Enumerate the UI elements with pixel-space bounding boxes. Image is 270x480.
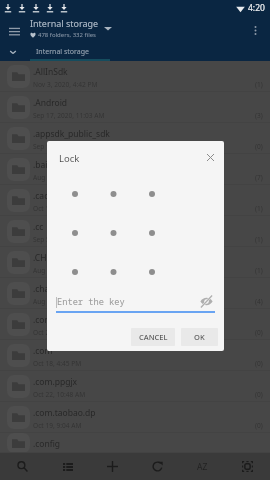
staticText: .com.taobao.dp: [33, 407, 96, 419]
staticText: (1): [255, 235, 263, 244]
button[interactable]: View: [45, 453, 90, 480]
staticText: .AllInSdk: [33, 66, 68, 78]
button[interactable]: Show password: [200, 295, 213, 308]
staticText: .com.cmcm: [33, 314, 79, 326]
staticText: Sep 5, 2020, 8:20 AM: [33, 235, 97, 244]
staticText: .CH: [33, 252, 47, 264]
staticText: Sep 15, 2020, 7:12 PM: [33, 142, 101, 151]
staticText: (7): [255, 173, 263, 182]
staticText: Lock: [59, 152, 80, 165]
staticText: .Android: [33, 97, 68, 109]
staticText: (4): [255, 297, 263, 306]
staticText: .chartboost: [33, 283, 79, 295]
staticText: (0): [255, 328, 263, 337]
button[interactable]: Close: [200, 147, 220, 167]
staticText: Oct 19, 9:04 AM: [33, 421, 82, 430]
button[interactable]: CANCEL: [131, 328, 175, 346]
staticText: (0): [255, 359, 263, 368]
button[interactable]: .com: [0, 340, 270, 371]
staticText: Sep 17, 2020, 11:03 AM: [33, 111, 105, 120]
staticText: Internal storage: [30, 17, 99, 29]
staticText: .cache: [33, 190, 59, 202]
button[interactable]: Add: [90, 453, 135, 480]
staticText: CANCEL: [139, 332, 168, 342]
staticText: (0): [255, 421, 263, 430]
staticText: Aug 9, 2020, 3:30 PM: [33, 266, 98, 275]
staticText: Oct 2, 2020, 11:21 AM: [33, 328, 100, 337]
button[interactable]: Refresh: [135, 453, 180, 480]
staticText: AZ: [197, 461, 208, 473]
button[interactable]: .Android: [0, 92, 270, 123]
staticText: (1): [255, 266, 263, 275]
staticText: Nov 3, 2020, 4:42 PM: [33, 80, 98, 89]
staticText: .com.ppgjx: [33, 376, 78, 388]
button[interactable]: Search: [0, 453, 45, 480]
staticText: (1): [255, 80, 263, 89]
button[interactable]: .cache: [0, 185, 270, 216]
staticText: 478 folders, 332 files: [38, 31, 96, 39]
staticText: Oct 22, 10:48 AM: [33, 390, 86, 399]
button[interactable]: .com.cmcm: [0, 309, 270, 340]
staticText: .config: [33, 438, 61, 450]
button[interactable]: OK: [181, 328, 218, 346]
button[interactable]: .com.taobao.dp: [0, 402, 270, 433]
staticText: (3): [255, 111, 263, 120]
staticText: .baidu: [33, 159, 58, 171]
staticText: Aug 18, 2020, 6:12 PM: [33, 297, 102, 306]
button[interactable]: .config: [0, 433, 270, 453]
staticText: (0): [255, 390, 263, 399]
button[interactable]: .chartboost: [0, 278, 270, 309]
button[interactable]: .com.ppgjx: [0, 371, 270, 402]
staticText: OK: [194, 332, 205, 342]
button[interactable]: Menu: [0, 16, 29, 45]
staticText: (1): [255, 204, 263, 213]
staticText: (0): [255, 142, 263, 151]
button[interactable]: Select: [225, 453, 270, 480]
button[interactable]: .appsdk_public_sdk: [0, 123, 270, 154]
staticText: Enter the key: [57, 296, 125, 308]
staticText: Aug 2, 2020, 9:01 AM: [33, 173, 98, 182]
button[interactable]: .baidu: [0, 154, 270, 185]
button[interactable]: .CH: [0, 247, 270, 278]
button[interactable]: More options: [241, 16, 270, 45]
staticText: .appsdk_public_sdk: [33, 128, 110, 140]
staticText: Oct 18, 4:45 PM: [33, 359, 82, 368]
staticText: .cc: [33, 221, 44, 233]
staticText: Internal storage: [36, 47, 89, 57]
button[interactable]: .AllInSdk: [0, 61, 270, 92]
staticText: .com: [33, 345, 53, 357]
staticText: 4:20: [248, 2, 265, 14]
button[interactable]: .cc: [0, 216, 270, 247]
staticText: Oct 12, 2020, 1:44 PM: [33, 204, 100, 213]
